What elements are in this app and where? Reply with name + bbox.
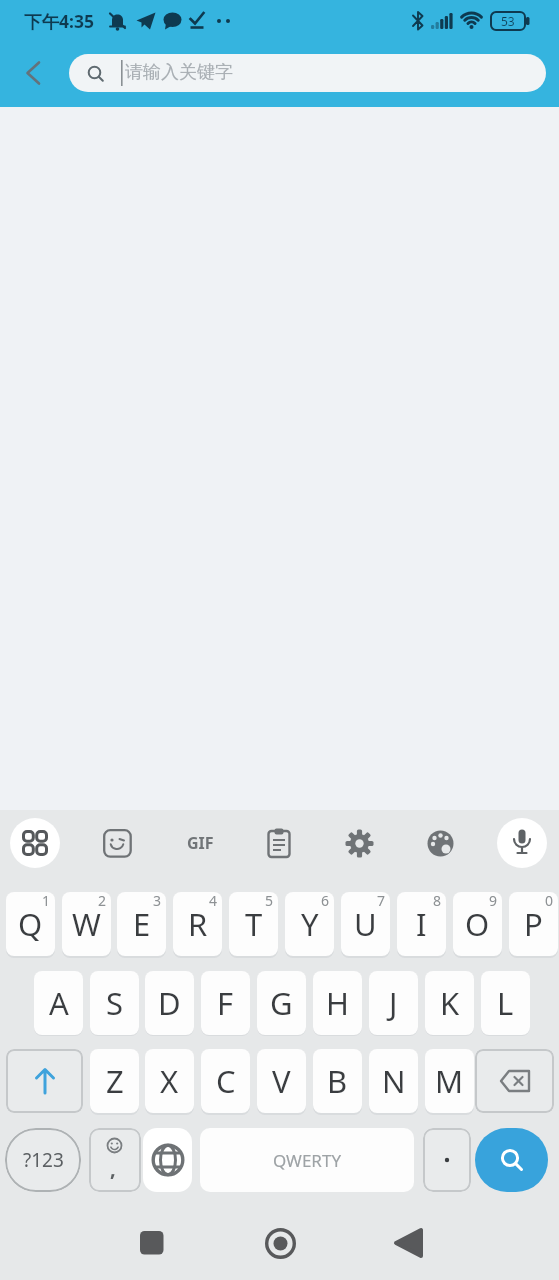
button[interactable]: [13, 53, 53, 93]
button[interactable]: L: [481, 971, 530, 1035]
button[interactable]: U: [341, 892, 390, 956]
staticText: QWERTY: [273, 1149, 342, 1172]
button[interactable]: Q: [6, 892, 55, 956]
button[interactable]: A: [34, 971, 83, 1035]
staticText: U: [354, 903, 377, 945]
staticText: D: [158, 982, 181, 1024]
staticText: X: [160, 1060, 179, 1102]
button[interactable]: [262, 1225, 298, 1261]
staticText: R: [188, 903, 208, 945]
button[interactable]: J: [369, 971, 418, 1035]
button[interactable]: [426, 829, 455, 858]
button[interactable]: [390, 1225, 426, 1261]
button[interactable]: QWERTY: [200, 1128, 414, 1192]
button[interactable]: V: [257, 1049, 306, 1113]
staticText: ?123: [23, 1147, 64, 1173]
button[interactable]: S: [90, 971, 139, 1035]
button[interactable]: R: [173, 892, 222, 956]
button[interactable]: E: [117, 892, 166, 956]
button[interactable]: T: [229, 892, 278, 956]
button[interactable]: G: [257, 971, 306, 1035]
staticText: 7: [377, 892, 386, 910]
staticText: M: [435, 1060, 464, 1102]
staticText: 2: [98, 892, 107, 910]
button[interactable]: 请输入关键字: [69, 54, 546, 92]
staticText: ,: [110, 1155, 116, 1182]
staticText: Y: [301, 903, 319, 945]
button[interactable]: [265, 828, 293, 858]
staticText: Q: [18, 903, 43, 945]
button[interactable]: [345, 829, 374, 858]
staticText: G: [270, 982, 293, 1024]
staticText: 6: [321, 892, 330, 910]
staticText: 下午4:35: [24, 9, 94, 33]
button[interactable]: W: [62, 892, 111, 956]
staticText: 4: [209, 892, 218, 910]
staticText: 5: [265, 892, 274, 910]
button[interactable]: H: [313, 971, 362, 1035]
staticText: N: [382, 1060, 406, 1102]
button[interactable]: [6, 1049, 83, 1113]
staticText: O: [465, 903, 490, 945]
button[interactable]: [143, 1128, 192, 1192]
staticText: 请输入关键字: [125, 61, 233, 84]
button[interactable]: C: [201, 1049, 250, 1113]
staticText: K: [440, 982, 460, 1024]
button[interactable]: [475, 1128, 548, 1192]
staticText: E: [133, 903, 151, 945]
staticText: L: [497, 982, 514, 1024]
staticText: 53: [501, 13, 515, 29]
staticText: Z: [106, 1060, 124, 1102]
button[interactable]: [134, 1225, 170, 1261]
button[interactable]: P: [509, 892, 558, 956]
button[interactable]: [475, 1049, 554, 1113]
staticText: 0: [545, 892, 554, 910]
button[interactable]: [103, 829, 132, 858]
button[interactable]: ,: [89, 1128, 141, 1192]
button[interactable]: D: [145, 971, 194, 1035]
button[interactable]: K: [425, 971, 474, 1035]
staticText: I: [416, 903, 427, 945]
button[interactable]: [497, 818, 547, 868]
staticText: J: [389, 982, 398, 1024]
staticText: V: [272, 1060, 291, 1102]
button[interactable]: B: [313, 1049, 362, 1113]
staticText: C: [216, 1060, 236, 1102]
button[interactable]: Z: [90, 1049, 139, 1113]
button[interactable]: Y: [285, 892, 334, 956]
staticText: 9: [489, 892, 498, 910]
button[interactable]: F: [201, 971, 250, 1035]
staticText: B: [327, 1060, 348, 1102]
staticText: 8: [433, 892, 442, 910]
staticText: S: [106, 982, 124, 1024]
staticText: H: [326, 982, 349, 1024]
staticText: 1: [42, 892, 51, 910]
staticText: GIF: [187, 832, 214, 854]
button[interactable]: N: [369, 1049, 418, 1113]
staticText: T: [245, 903, 263, 945]
staticText: F: [217, 982, 234, 1024]
staticText: P: [524, 903, 543, 945]
button[interactable]: M: [425, 1049, 474, 1113]
button[interactable]: X: [145, 1049, 194, 1113]
staticText: W: [72, 903, 101, 945]
staticText: A: [49, 982, 69, 1024]
staticText: 3: [153, 892, 162, 910]
button[interactable]: GIF: [180, 829, 220, 857]
button[interactable]: [423, 1128, 471, 1192]
button[interactable]: O: [453, 892, 502, 956]
button[interactable]: [10, 818, 60, 868]
button[interactable]: ?123: [5, 1128, 81, 1192]
button[interactable]: I: [397, 892, 446, 956]
